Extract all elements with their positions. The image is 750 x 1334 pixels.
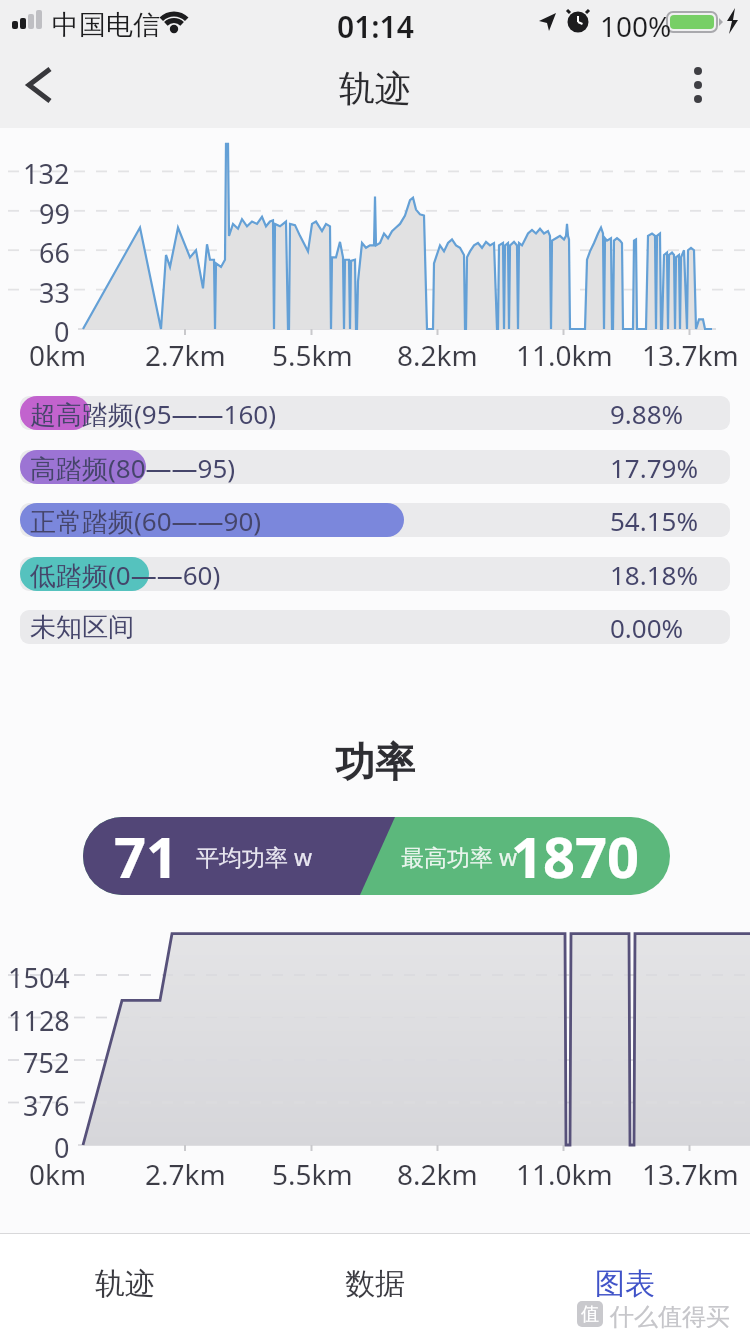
- button[interactable]: 高踏频(80——95): [20, 450, 730, 484]
- staticText: 0: [54, 1129, 70, 1166]
- staticText: 轨迹: [95, 1265, 155, 1303]
- button[interactable]: 低踏频(0——60): [20, 557, 730, 591]
- staticText: 中国电信: [52, 8, 160, 42]
- staticText: 图表: [595, 1265, 655, 1303]
- staticText: 752: [23, 1044, 70, 1081]
- button[interactable]: 超高踏频(95——160): [20, 396, 730, 430]
- staticText: 33: [39, 274, 70, 311]
- staticText: 超高踏频(95——160): [30, 396, 276, 430]
- staticText: 什么值得买: [610, 1302, 730, 1332]
- staticText: 9.88%: [610, 396, 684, 430]
- staticText: 平均功率 w: [196, 841, 313, 872]
- staticText: 最高功率 w: [401, 841, 518, 872]
- staticText: 未知区间: [30, 611, 134, 644]
- staticText: 376: [23, 1087, 70, 1124]
- staticText: 54.15%: [610, 503, 699, 537]
- staticText: 正常踏频(60——90): [30, 503, 262, 537]
- staticText: 11.0km: [516, 336, 613, 374]
- staticText: 数据: [345, 1265, 405, 1303]
- staticText: 132: [23, 155, 70, 192]
- staticText: 13.7km: [642, 336, 739, 374]
- staticText: 0.00%: [610, 610, 684, 644]
- staticText: 高踏频(80——95): [30, 450, 236, 484]
- button[interactable]: 71: [83, 817, 670, 895]
- staticText: 1128: [8, 1002, 70, 1039]
- staticText: 1870: [511, 818, 640, 894]
- staticText: 2.7km: [145, 336, 226, 374]
- staticText: 5.5km: [272, 336, 353, 374]
- button[interactable]: 轨迹: [45, 1252, 205, 1316]
- staticText: 0km: [29, 336, 87, 374]
- staticText: 71: [114, 818, 179, 894]
- staticText: 66: [39, 234, 70, 271]
- staticText: 17.79%: [610, 450, 699, 484]
- staticText: 5.5km: [272, 1155, 353, 1193]
- button[interactable]: 未知区间: [20, 610, 730, 644]
- staticText: 值: [581, 1303, 599, 1326]
- button[interactable]: 数据: [295, 1252, 455, 1316]
- staticText: 轨迹: [339, 66, 411, 111]
- staticText: 8.2km: [397, 336, 478, 374]
- staticText: 0: [54, 313, 70, 350]
- staticText: 01:14: [337, 6, 414, 47]
- staticText: 99: [39, 195, 70, 232]
- button[interactable]: 图表: [545, 1252, 705, 1316]
- staticText: 低踏频(0——60): [30, 557, 221, 591]
- staticText: 8.2km: [397, 1155, 478, 1193]
- staticText: 1504: [8, 959, 70, 996]
- staticText: 2.7km: [145, 1155, 226, 1193]
- button[interactable]: [16, 60, 66, 110]
- staticText: 功率: [335, 737, 415, 787]
- staticText: 0km: [29, 1155, 87, 1193]
- staticText: 11.0km: [516, 1155, 613, 1193]
- staticText: 18.18%: [610, 557, 699, 591]
- staticText: 100%: [600, 7, 672, 45]
- button[interactable]: 正常踏频(60——90): [20, 503, 730, 537]
- button[interactable]: [678, 60, 722, 110]
- staticText: 13.7km: [642, 1155, 739, 1193]
